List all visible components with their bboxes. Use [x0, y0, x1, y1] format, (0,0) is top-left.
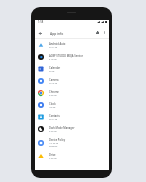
button[interactable]: Back — [36, 29, 44, 37]
button[interactable]: AOSP STUDIO MOJA Service — [35, 51, 109, 63]
staticText: 6.63 MB — [49, 130, 57, 133]
button[interactable]: Sort — [94, 29, 101, 36]
staticText: 8.18 MB — [49, 58, 57, 61]
staticText: Dark Mode Manager — [49, 126, 75, 130]
staticText: Contacts — [49, 114, 60, 118]
staticText: 190 kB — [49, 106, 56, 109]
staticText: 1:58 — [38, 20, 44, 24]
staticText: 40.16 kB — [49, 82, 58, 85]
button[interactable]: Android Auto — [35, 39, 109, 51]
button[interactable]: Camera — [35, 75, 109, 87]
button[interactable]: Dark Mode Manager — [35, 123, 109, 135]
staticText: 5.09 MB — [49, 94, 57, 97]
staticText: Android Auto — [49, 42, 66, 46]
staticText: Drive — [49, 153, 56, 157]
staticText: Clock — [49, 102, 56, 106]
staticText: 141.66 kB — [49, 142, 59, 145]
button[interactable]: Device Policy — [35, 135, 109, 150]
staticText: Chrome — [49, 90, 59, 94]
staticText: Disabled — [49, 145, 58, 148]
staticText: Camera — [49, 78, 59, 82]
staticText: App info — [50, 31, 64, 35]
button[interactable]: Drive — [35, 150, 109, 162]
staticText: 36.71 kB — [49, 118, 58, 121]
staticText: Device Policy — [49, 138, 66, 142]
button[interactable]: Clock — [35, 99, 109, 111]
button[interactable]: Chrome — [35, 87, 109, 99]
button[interactable]: Contacts — [35, 111, 109, 123]
staticText: Calendar — [49, 66, 61, 70]
button[interactable]: More options — [101, 29, 108, 36]
staticText: AOSP STUDIO MOJA Service — [49, 54, 84, 58]
button[interactable]: Calendar — [35, 63, 109, 75]
staticText: 32.71 kB — [49, 46, 58, 49]
staticText: 35 kB — [49, 70, 55, 73]
staticText: 4.36 MB — [49, 157, 57, 160]
